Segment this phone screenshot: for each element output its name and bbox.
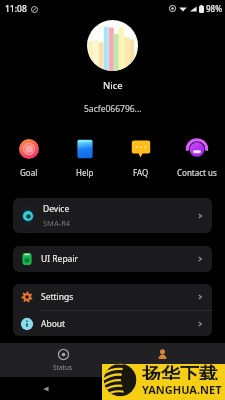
staticText: FAQ	[133, 167, 149, 178]
button[interactable]: Device	[13, 198, 212, 233]
staticText: 98%	[206, 3, 222, 14]
button[interactable]: Contact us	[169, 137, 225, 180]
button[interactable]: UI Repair	[13, 246, 212, 272]
staticText: UI Repair	[41, 253, 79, 265]
staticText: Status	[53, 363, 73, 372]
staticText: 5acfe066796...	[84, 103, 142, 115]
staticText: About	[41, 318, 66, 330]
button[interactable]: Help	[57, 137, 113, 180]
staticText: Goal	[20, 167, 38, 178]
button[interactable]: FAQ	[113, 137, 169, 180]
staticText: SMA-R4	[43, 218, 71, 228]
other: Back	[42, 385, 50, 393]
staticText: Device	[43, 203, 70, 215]
button[interactable]: Settings	[13, 284, 212, 310]
button[interactable]: Status	[30, 343, 96, 377]
staticText: Help	[76, 167, 94, 178]
button[interactable]: Me	[129, 343, 195, 377]
staticText: 11:08	[5, 3, 27, 15]
button[interactable]: Goal	[0, 137, 57, 180]
staticText: Settings	[41, 291, 74, 303]
staticText: 扬华下载	[142, 363, 218, 380]
button[interactable]: About	[13, 311, 212, 336]
staticText: Contact us	[177, 167, 217, 178]
staticText: Nice	[103, 79, 123, 92]
staticText: Me	[157, 363, 167, 372]
staticText: YANGHUA.NET	[142, 382, 222, 397]
